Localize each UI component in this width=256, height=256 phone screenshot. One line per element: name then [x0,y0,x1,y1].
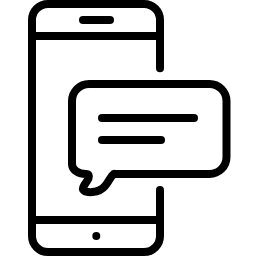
button[interactable]: Phone message icon [0,0,256,256]
